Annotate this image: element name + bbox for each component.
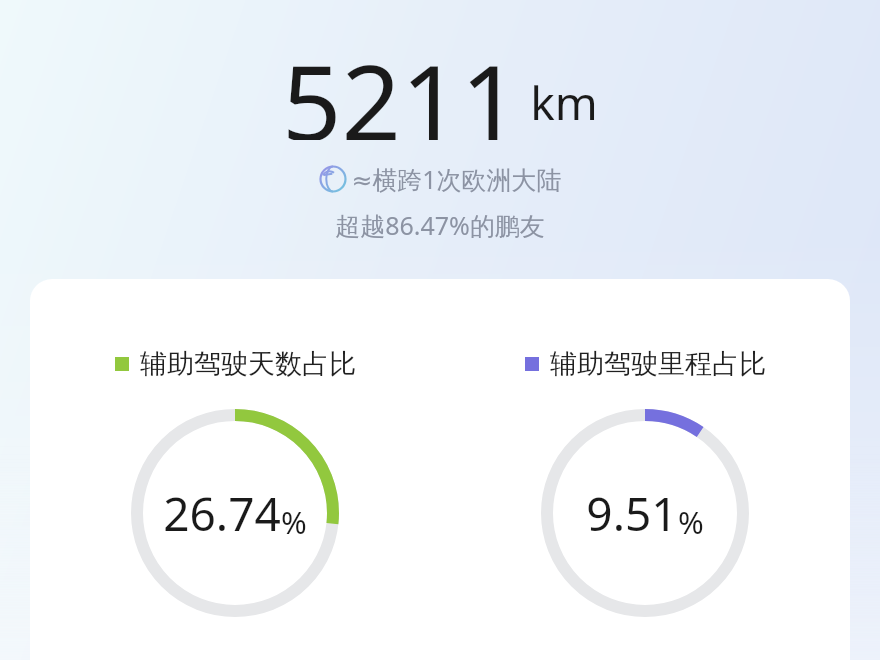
other: Globe	[319, 165, 347, 193]
button[interactable]: 辅助驾驶里程占比	[440, 279, 850, 617]
staticText: km	[530, 71, 598, 134]
staticText: 辅助驾驶里程占比	[550, 347, 766, 381]
staticText: 5211	[282, 30, 520, 140]
button[interactable]: 辅助驾驶天数占比	[30, 279, 440, 617]
staticText: %	[281, 501, 307, 543]
staticText: 9.51	[586, 482, 678, 545]
staticText: %	[678, 501, 704, 543]
staticText: ≈横跨1次欧洲大陆	[351, 162, 562, 196]
staticText: 超越86.47%的鹏友	[335, 208, 545, 242]
staticText: 26.74	[163, 482, 281, 545]
staticText: 辅助驾驶天数占比	[140, 347, 356, 381]
